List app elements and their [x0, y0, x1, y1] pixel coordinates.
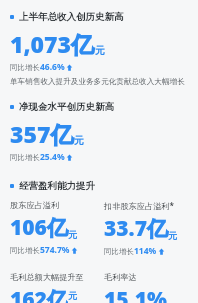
staticText: 同比增长 — [10, 63, 40, 72]
staticText: 25.4% — [40, 151, 65, 163]
other: Increase — [71, 246, 78, 255]
staticText: 1,073亿 — [10, 28, 95, 59]
staticText: 上半年总收入创历史新高 — [19, 11, 124, 23]
staticText: 元 — [68, 290, 77, 301]
button[interactable]: 上半年总收入创历史新高 — [0, 11, 198, 23]
button[interactable]: 经营盈利能力提升 — [0, 180, 198, 192]
other: Increase — [66, 63, 73, 72]
button[interactable]: 扣非股东应占溢利* — [104, 200, 194, 257]
staticText: 元 — [74, 134, 84, 147]
staticText: 扣非股东应占溢利* — [104, 200, 174, 211]
button[interactable]: 毛利总额大幅提升至 — [10, 272, 104, 303]
staticText: 33.7亿 — [104, 214, 168, 243]
staticText: 毛利率达 — [104, 272, 137, 282]
staticText: 46.6% — [40, 61, 65, 73]
staticText: 净现金水平创历史新高 — [19, 101, 114, 113]
staticText: 357亿 — [10, 118, 74, 149]
staticText: 毛利总额大幅提升至 — [10, 272, 84, 282]
button[interactable]: 毛利率达 — [104, 272, 194, 303]
staticText: 股东应占溢利 — [10, 200, 60, 210]
staticText: 同比增长 — [104, 247, 134, 256]
staticText: 同比增长 — [10, 153, 40, 162]
other: Increase — [66, 153, 73, 162]
staticText: 单车销售收入提升及业务多元化贡献总收入大幅增长 — [10, 77, 185, 87]
staticText: 114% — [134, 245, 157, 257]
button[interactable]: 股东应占溢利 — [10, 200, 104, 256]
staticText: 106亿 — [10, 213, 68, 242]
staticText: 元 — [95, 44, 105, 57]
other: Increase — [158, 247, 165, 256]
staticText: 元 — [168, 230, 177, 241]
staticText: 574.7% — [40, 244, 70, 256]
button[interactable]: 净现金水平创历史新高 — [0, 101, 198, 113]
staticText: 162亿 — [10, 285, 68, 303]
staticText: 经营盈利能力提升 — [19, 180, 95, 192]
staticText: 15.1% — [104, 285, 167, 303]
staticText: 元 — [68, 229, 77, 240]
staticText: 同比增长 — [10, 246, 40, 255]
